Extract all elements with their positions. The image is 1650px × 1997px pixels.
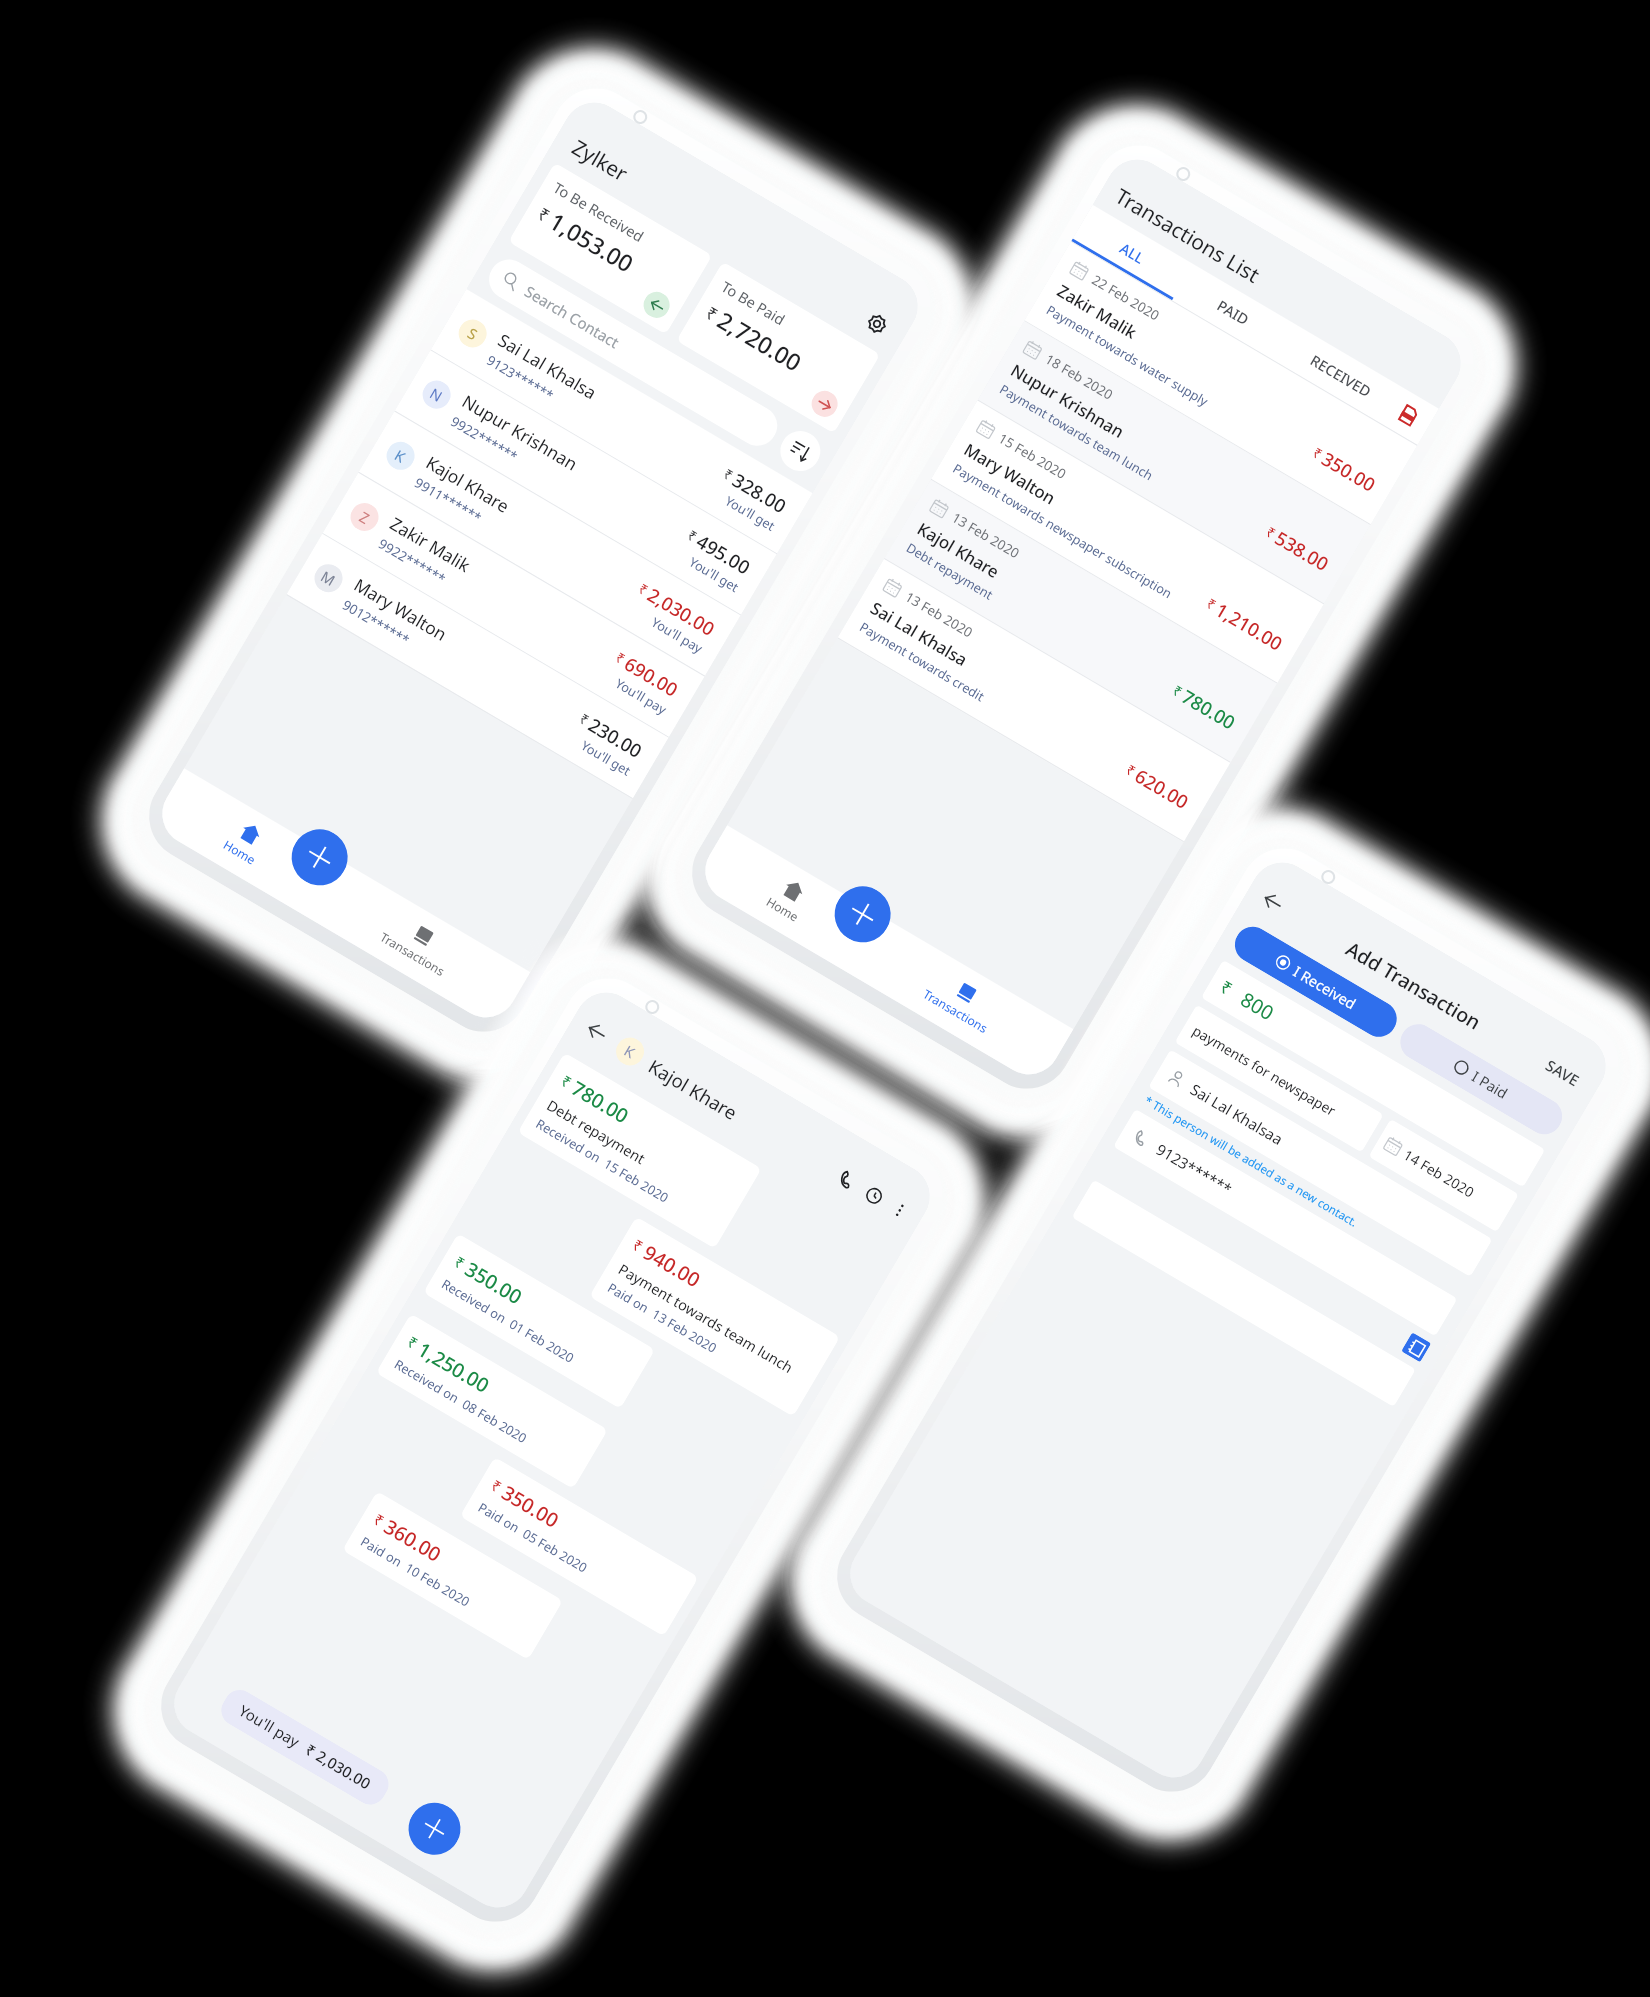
staticText: Nupur Krishnan bbox=[458, 389, 582, 476]
staticText: Transactions List bbox=[1110, 182, 1265, 289]
staticText: 690.00 bbox=[620, 651, 684, 702]
button[interactable]: Search Contact bbox=[482, 252, 785, 453]
staticText: Debt repayment bbox=[543, 1095, 649, 1168]
button[interactable]: ₹ bbox=[517, 1052, 762, 1249]
staticText: 350.00 bbox=[460, 1255, 527, 1310]
button[interactable]: Sai Lal Khalsaa bbox=[1148, 1049, 1493, 1277]
button[interactable]: 13 Feb 2020 bbox=[837, 559, 1230, 842]
button[interactable]: M bbox=[287, 534, 668, 798]
button[interactable]: ₹ bbox=[1201, 960, 1545, 1187]
button[interactable]: More options bbox=[882, 1192, 918, 1228]
staticText: 9123****** bbox=[483, 351, 557, 405]
button[interactable]: To Be Paid bbox=[676, 261, 880, 434]
staticText: 9123****** bbox=[1152, 1139, 1236, 1200]
staticText: 800 bbox=[1236, 986, 1279, 1026]
staticText: Payment towards water supply bbox=[1044, 301, 1212, 409]
staticText: ₹ bbox=[534, 201, 554, 227]
staticText: You'll pay bbox=[613, 674, 670, 718]
staticText: Kajol Khare bbox=[644, 1053, 742, 1125]
staticText: K bbox=[391, 445, 410, 467]
staticText: 360.00 bbox=[379, 1513, 446, 1568]
staticText: Zylker bbox=[567, 133, 633, 188]
staticText: Received on 08 Feb 2020 bbox=[392, 1355, 530, 1446]
staticText: I Paid bbox=[1468, 1066, 1512, 1103]
button[interactable]: Transactions bbox=[906, 954, 1016, 1048]
button[interactable]: ₹ bbox=[589, 1216, 840, 1417]
staticText: 2,720.00 bbox=[712, 304, 808, 379]
staticText: 9911****** bbox=[411, 473, 485, 527]
staticText: ₹ bbox=[487, 1475, 506, 1498]
button[interactable]: Add transaction bbox=[824, 876, 901, 953]
staticText: Kajol Khare bbox=[913, 517, 1004, 583]
staticText: Paid on 13 Feb 2020 bbox=[605, 1278, 720, 1356]
staticText: * This person will be added as a new con… bbox=[1141, 1093, 1361, 1231]
staticText: Paid on 05 Feb 2020 bbox=[475, 1498, 591, 1576]
staticText: 1,250.00 bbox=[413, 1336, 495, 1399]
staticText: 328.00 bbox=[728, 467, 792, 519]
button[interactable]: To Be Received bbox=[508, 162, 712, 335]
staticText: Search Contact bbox=[521, 281, 624, 353]
button[interactable]: PAID bbox=[1172, 264, 1294, 360]
button[interactable]: ₹ bbox=[460, 1457, 699, 1636]
staticText: RECEIVED bbox=[1307, 350, 1375, 401]
button[interactable]: History bbox=[856, 1177, 892, 1213]
button[interactable]: I Paid bbox=[1394, 1017, 1569, 1141]
button[interactable]: Call bbox=[828, 1161, 864, 1197]
button[interactable]: ₹ bbox=[376, 1313, 608, 1489]
staticText: ₹ bbox=[557, 1070, 575, 1093]
button[interactable]: Settings bbox=[853, 300, 900, 346]
button[interactable]: K bbox=[359, 411, 741, 676]
staticText: M bbox=[317, 566, 340, 590]
staticText: You'll get bbox=[723, 492, 779, 534]
staticText: 22 Feb 2020 bbox=[1089, 271, 1163, 325]
button[interactable]: Pick contact bbox=[1401, 1332, 1431, 1362]
button[interactable]: SAVE bbox=[1536, 1049, 1589, 1097]
staticText: ₹ bbox=[702, 300, 722, 326]
button[interactable]: Z bbox=[323, 473, 705, 737]
button[interactable]: 9123****** bbox=[1113, 1109, 1458, 1336]
staticText: SAVE bbox=[1542, 1055, 1583, 1091]
button[interactable]: Home bbox=[750, 862, 827, 937]
button[interactable]: Transactions bbox=[363, 897, 473, 991]
button[interactable]: Export PDF bbox=[1393, 400, 1423, 430]
button[interactable]: Back bbox=[1252, 881, 1293, 922]
button[interactable]: Back bbox=[576, 1011, 617, 1052]
staticText: Payment towards team lunch bbox=[615, 1259, 798, 1377]
staticText: 9922****** bbox=[447, 412, 521, 466]
staticText: Nupur Krishnan bbox=[1007, 358, 1129, 443]
staticText: 2,030.00 bbox=[643, 582, 720, 641]
staticText: Payment towards credit bbox=[857, 618, 988, 704]
staticText: 350.00 bbox=[1317, 446, 1381, 497]
button[interactable]: 14 Feb 2020 bbox=[1368, 1119, 1519, 1232]
button[interactable]: I Received bbox=[1228, 920, 1403, 1043]
staticText: Payment towards newspaper subscription bbox=[950, 459, 1176, 602]
button[interactable]: ₹ bbox=[423, 1233, 655, 1409]
button[interactable]: payments for newspaper bbox=[1174, 1004, 1384, 1152]
button[interactable]: ALL bbox=[1071, 205, 1193, 300]
staticText: You'll get bbox=[686, 553, 742, 595]
staticText: 1,053.00 bbox=[544, 205, 640, 280]
staticText: ₹ bbox=[720, 464, 737, 484]
staticText: N bbox=[426, 383, 447, 406]
button[interactable]: 13 Feb 2020 bbox=[884, 480, 1277, 763]
button[interactable]: ₹ bbox=[342, 1491, 563, 1660]
staticText: ₹ bbox=[1123, 760, 1139, 780]
button[interactable]: Add bbox=[281, 819, 358, 896]
button[interactable]: RECEIVED bbox=[1273, 324, 1410, 428]
button[interactable]: 15 Feb 2020 bbox=[931, 400, 1324, 684]
button[interactable]: 22 Feb 2020 bbox=[1024, 242, 1417, 525]
button[interactable]: You'll pay bbox=[215, 1684, 394, 1810]
staticText: ₹ bbox=[370, 1509, 388, 1532]
staticText: Mary Walton bbox=[350, 572, 452, 646]
button[interactable]: N bbox=[395, 350, 777, 615]
staticText: 780.00 bbox=[567, 1074, 634, 1129]
button[interactable]: Home bbox=[207, 805, 284, 880]
staticText: PAID bbox=[1214, 295, 1253, 329]
button[interactable] bbox=[1071, 1179, 1416, 1407]
staticText: Mary Walton bbox=[960, 438, 1060, 510]
staticText: ₹ bbox=[612, 648, 629, 668]
button[interactable]: 18 Feb 2020 bbox=[977, 321, 1370, 604]
button[interactable]: Sort bbox=[773, 424, 828, 478]
button[interactable]: S bbox=[431, 289, 813, 553]
button[interactable]: Add bbox=[399, 1793, 470, 1864]
